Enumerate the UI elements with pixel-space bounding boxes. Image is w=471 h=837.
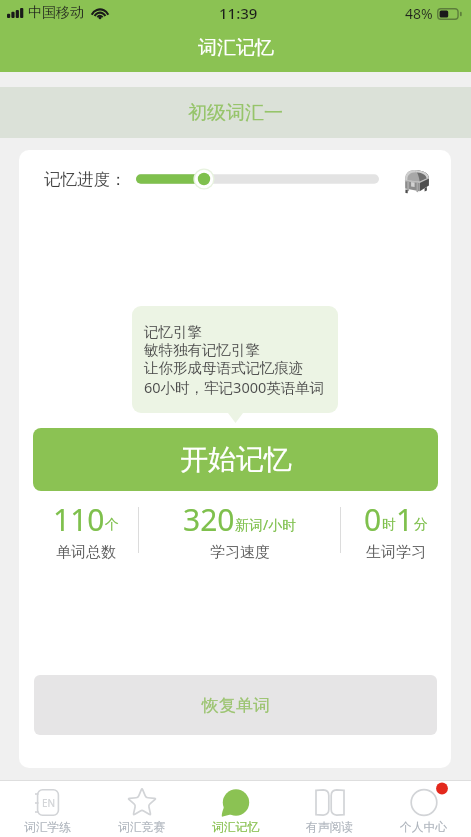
staticText: 单词总数 bbox=[56, 543, 116, 561]
staticText: 恢复单词 bbox=[202, 695, 270, 716]
staticText: 学习速度 bbox=[210, 543, 270, 561]
staticText: EN bbox=[42, 796, 56, 810]
staticText: 0 bbox=[364, 499, 382, 540]
staticText: 110 bbox=[53, 499, 105, 540]
button[interactable]: 词汇竞赛 bbox=[95, 781, 189, 837]
staticText: 词汇学练 bbox=[24, 820, 72, 835]
button[interactable]: 个人中心 bbox=[377, 781, 471, 837]
staticText: 记忆引擎 bbox=[144, 323, 202, 341]
staticText: 48% bbox=[405, 4, 433, 23]
staticText: 11:39 bbox=[219, 3, 258, 23]
staticText: 初级词汇一 bbox=[188, 101, 283, 125]
staticText: 开始记忆 bbox=[180, 442, 292, 477]
staticText: 1 bbox=[396, 499, 414, 540]
button[interactable]: 词汇记忆 bbox=[189, 781, 283, 837]
staticText: 词汇记忆 bbox=[198, 36, 274, 60]
staticText: 词汇竞赛 bbox=[118, 820, 166, 835]
button[interactable]: EN bbox=[0, 781, 95, 837]
staticText: 生词学习 bbox=[366, 543, 426, 561]
staticText: 60小时，牢记3000英语单词 bbox=[144, 377, 325, 397]
staticText: 让你形成母语式记忆痕迹 bbox=[144, 359, 304, 377]
staticText: 分 bbox=[414, 516, 428, 534]
staticText: 敏特独有记忆引擎 bbox=[144, 341, 260, 359]
staticText: 个人中心 bbox=[400, 820, 448, 835]
staticText: 时 bbox=[382, 516, 396, 534]
button[interactable]: 有声阅读 bbox=[283, 781, 377, 837]
staticText: 词汇记忆 bbox=[212, 820, 260, 835]
button[interactable]: 恢复单词 bbox=[34, 675, 437, 735]
staticText: 320 bbox=[183, 499, 235, 540]
staticText: 新词/小时 bbox=[235, 515, 297, 534]
staticText: 中国移动 bbox=[28, 4, 84, 22]
staticText: 记忆进度： bbox=[44, 169, 127, 190]
staticText: 有声阅读 bbox=[306, 820, 354, 835]
staticText: 个 bbox=[105, 516, 119, 534]
button[interactable]: 开始记忆 bbox=[33, 428, 438, 491]
